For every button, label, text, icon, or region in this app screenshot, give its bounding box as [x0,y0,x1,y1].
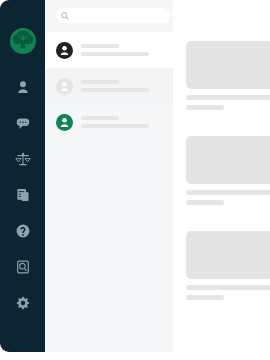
button[interactable]: Messages [12,112,34,134]
button[interactable] [45,68,173,104]
button[interactable]: Content card [186,136,270,205]
button[interactable]: Documents [12,184,34,206]
button[interactable]: Legal [12,148,34,170]
button[interactable]: Search documents [12,256,34,278]
button[interactable]: Search [56,8,170,23]
button[interactable] [45,32,173,68]
button[interactable]: Profile [12,76,34,98]
button[interactable]: Help [12,220,34,242]
button[interactable]: Home logo [10,28,36,54]
button[interactable]: Content card [186,231,270,300]
button[interactable]: Settings [12,292,34,314]
button[interactable] [45,104,173,140]
button[interactable]: Content card [186,41,270,110]
